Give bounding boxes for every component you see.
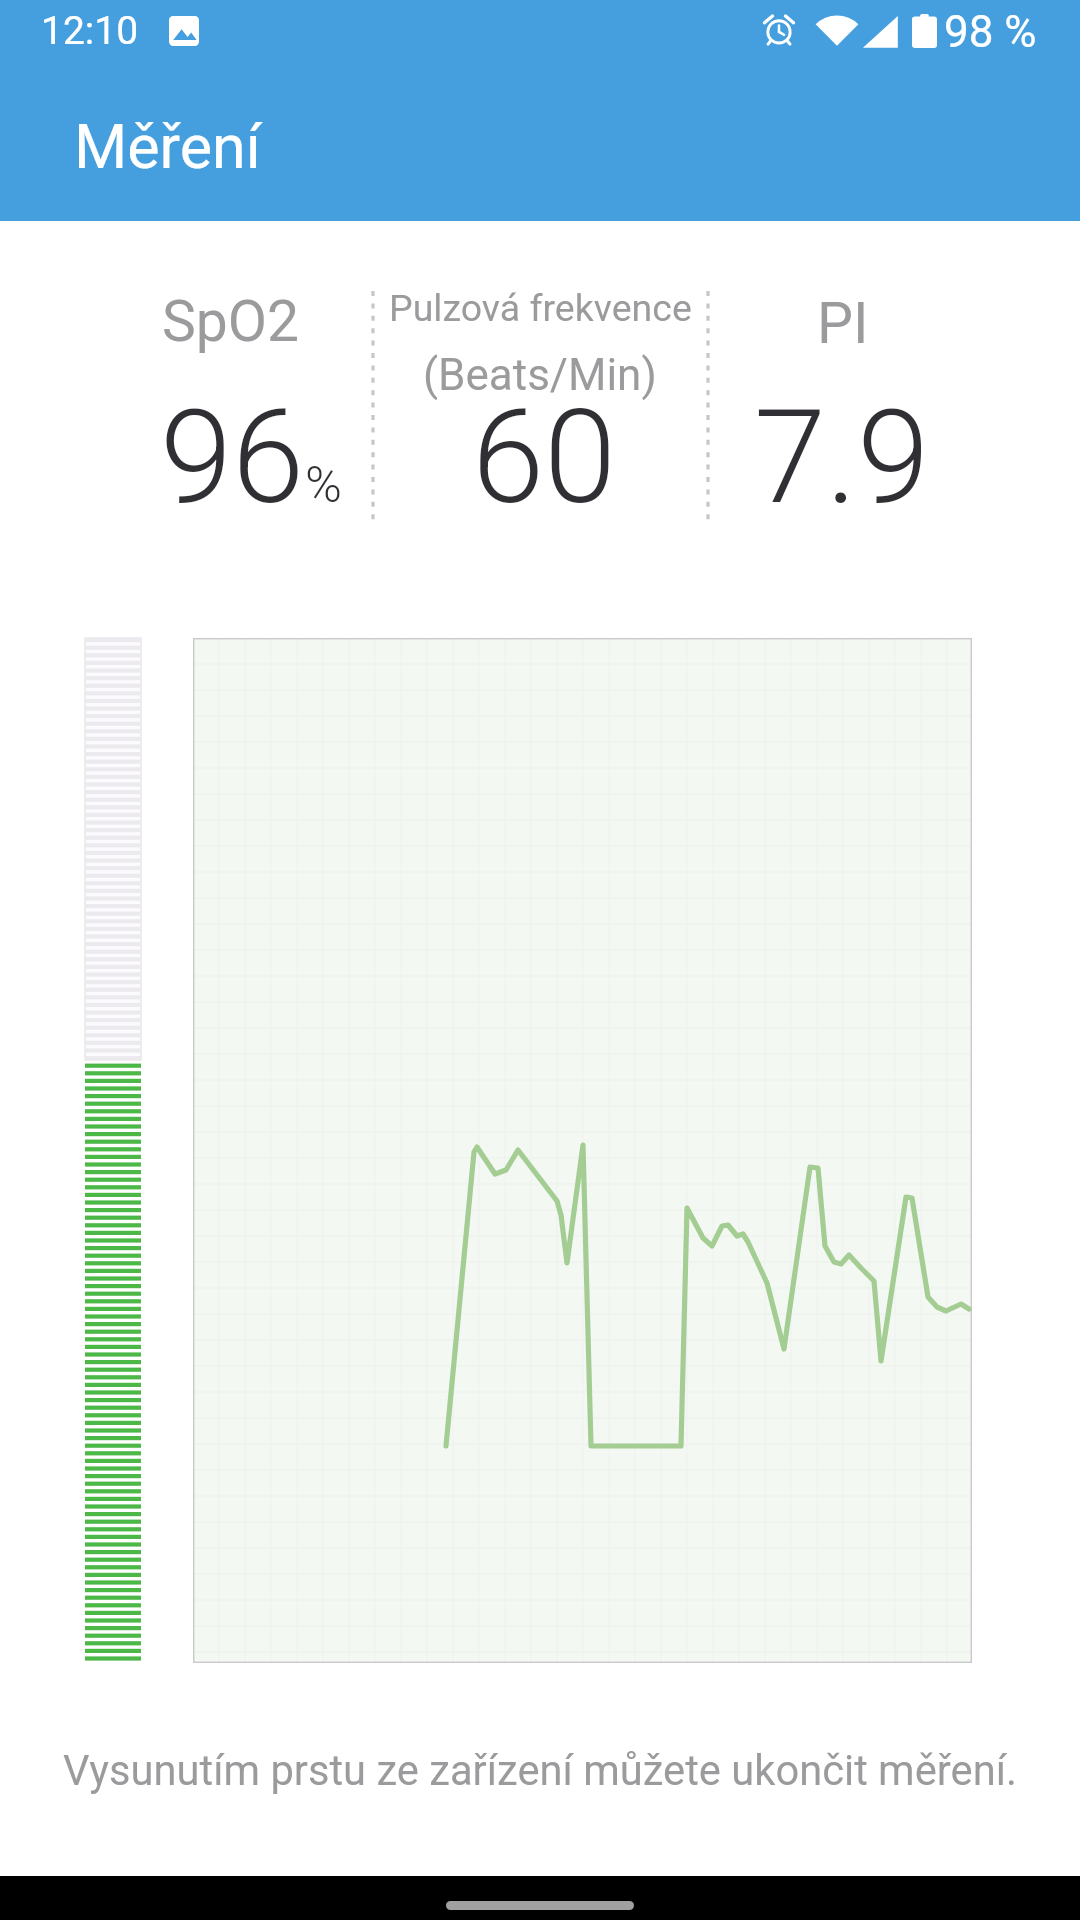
staticText: 96 xyxy=(160,381,305,533)
staticText: Vysunutím prstu ze zařízení můžete ukonč… xyxy=(63,1746,1017,1795)
staticText: 60 xyxy=(472,381,617,533)
other: Battery xyxy=(912,14,937,48)
staticText: PI xyxy=(817,290,869,357)
other: Alarm set xyxy=(761,11,797,47)
other: Wi-Fi xyxy=(816,10,858,46)
staticText: 7.9 xyxy=(754,381,930,533)
staticText: (Beats/Min) xyxy=(423,349,657,401)
other: Screenshot xyxy=(169,16,199,46)
staticText: Pulzová frekvence xyxy=(389,286,692,330)
staticText: SpO2 xyxy=(162,288,300,355)
staticText: 12:10 xyxy=(41,8,139,54)
staticText: 98 % xyxy=(944,6,1037,58)
staticText: % xyxy=(305,456,342,515)
staticText: Měření xyxy=(74,111,261,182)
other: Mobile signal xyxy=(860,10,902,52)
